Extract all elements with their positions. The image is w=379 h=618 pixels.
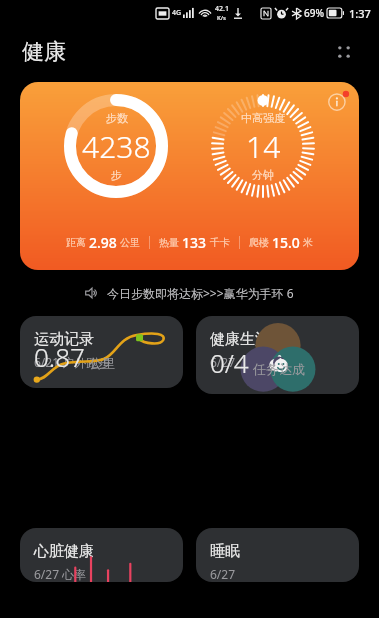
button[interactable]: 健康生活 <box>196 316 359 394</box>
button[interactable]: 心脏健康 <box>20 528 183 582</box>
staticText: 睡眠 <box>210 542 240 561</box>
staticText: 爬楼 <box>249 236 269 249</box>
staticText: 0/4 <box>210 345 249 380</box>
button[interactable]: 今日步数即将达标>>>赢华为手环 6 <box>0 282 379 304</box>
staticText: 千卡 <box>210 236 230 249</box>
staticText: 1:37 <box>349 6 371 21</box>
staticText: 15.0 <box>272 233 300 252</box>
staticText: K/s <box>217 14 227 22</box>
staticText: 中高强度 <box>241 111 285 125</box>
staticText: 公里 <box>89 355 115 371</box>
staticText: 距离 <box>66 236 86 249</box>
staticText: 133 <box>182 233 207 252</box>
button[interactable]: More options <box>327 35 361 69</box>
staticText: 6/27 <box>210 354 236 370</box>
staticText: 分钟 <box>252 168 274 182</box>
staticText: 任务达成 <box>253 361 305 377</box>
staticText: 6/21 户外跑步 <box>34 354 111 370</box>
staticText: 公里 <box>120 236 140 249</box>
staticText: 6/27 心率 <box>34 566 87 582</box>
staticText: 步 <box>111 168 122 182</box>
staticText: 69% <box>304 6 324 20</box>
button[interactable]: Information <box>20 82 359 270</box>
staticText: 健康 <box>22 38 66 66</box>
staticText: 步数 <box>106 111 128 125</box>
staticText: 42.1 <box>215 4 229 14</box>
staticText: 心脏健康 <box>34 542 94 561</box>
staticText: 4238 <box>82 126 151 167</box>
staticText: 今日步数即将达标>>>赢华为手环 6 <box>107 285 294 301</box>
button[interactable]: 运动记录 <box>20 316 183 388</box>
staticText: 米 <box>303 236 313 249</box>
button[interactable]: Information <box>327 90 349 112</box>
staticText: 0.87 <box>34 339 85 374</box>
staticText: 健康生活 <box>210 330 270 349</box>
staticText: 2.98 <box>89 233 117 252</box>
staticText: 热量 <box>159 236 179 249</box>
staticText: 6/27 <box>210 566 236 582</box>
staticText: 14 <box>246 126 281 167</box>
staticText: 4G <box>172 8 182 18</box>
button[interactable]: 睡眠 <box>196 528 359 582</box>
staticText: 运动记录 <box>34 330 94 349</box>
